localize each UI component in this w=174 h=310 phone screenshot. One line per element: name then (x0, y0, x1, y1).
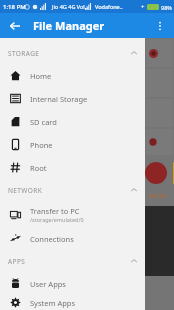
staticText: APPS (8, 257, 26, 266)
button[interactable]: Connections (0, 227, 145, 250)
staticText: Jio 4G 4G Vol.. (52, 3, 88, 10)
button[interactable]: NETWORK (0, 179, 145, 201)
staticText: /storage/emulated/0 (30, 216, 84, 223)
button[interactable]: Home (0, 64, 145, 87)
button[interactable] (146, 39, 173, 67)
staticText: + (141, 3, 145, 11)
staticText: 1:18 PM (3, 3, 26, 11)
staticText: SD card (30, 117, 57, 127)
button[interactable]: Back (4, 15, 26, 37)
staticText: Transfer to PC (30, 206, 80, 216)
button[interactable]: More options (149, 15, 171, 37)
staticText: STORAGE (8, 49, 40, 58)
button[interactable]: System Apps (0, 295, 145, 310)
staticText: Home (30, 71, 52, 81)
staticText: Vodafone.. (95, 3, 123, 10)
staticText: Connections (30, 234, 74, 244)
staticText: System Apps (30, 298, 76, 308)
staticText: Phone (30, 140, 53, 150)
button[interactable]: Root (0, 156, 145, 179)
button[interactable]: APPS (0, 250, 145, 272)
staticText: 98% (161, 4, 172, 11)
staticText: Internal Storage (30, 94, 88, 104)
staticText: NETWORK (8, 186, 43, 195)
staticText: MORE (149, 192, 167, 200)
staticText: User Apps (30, 279, 66, 289)
staticText: File Manager (33, 18, 105, 33)
button[interactable]: Transfer to PC (0, 201, 145, 227)
button[interactable]: Phone (0, 133, 145, 156)
button[interactable]: Internal Storage (0, 87, 145, 110)
staticText: Root (30, 163, 47, 173)
button[interactable]: STORAGE (0, 42, 145, 64)
button[interactable]: SD card (0, 110, 145, 133)
button[interactable]: User Apps (0, 272, 145, 295)
